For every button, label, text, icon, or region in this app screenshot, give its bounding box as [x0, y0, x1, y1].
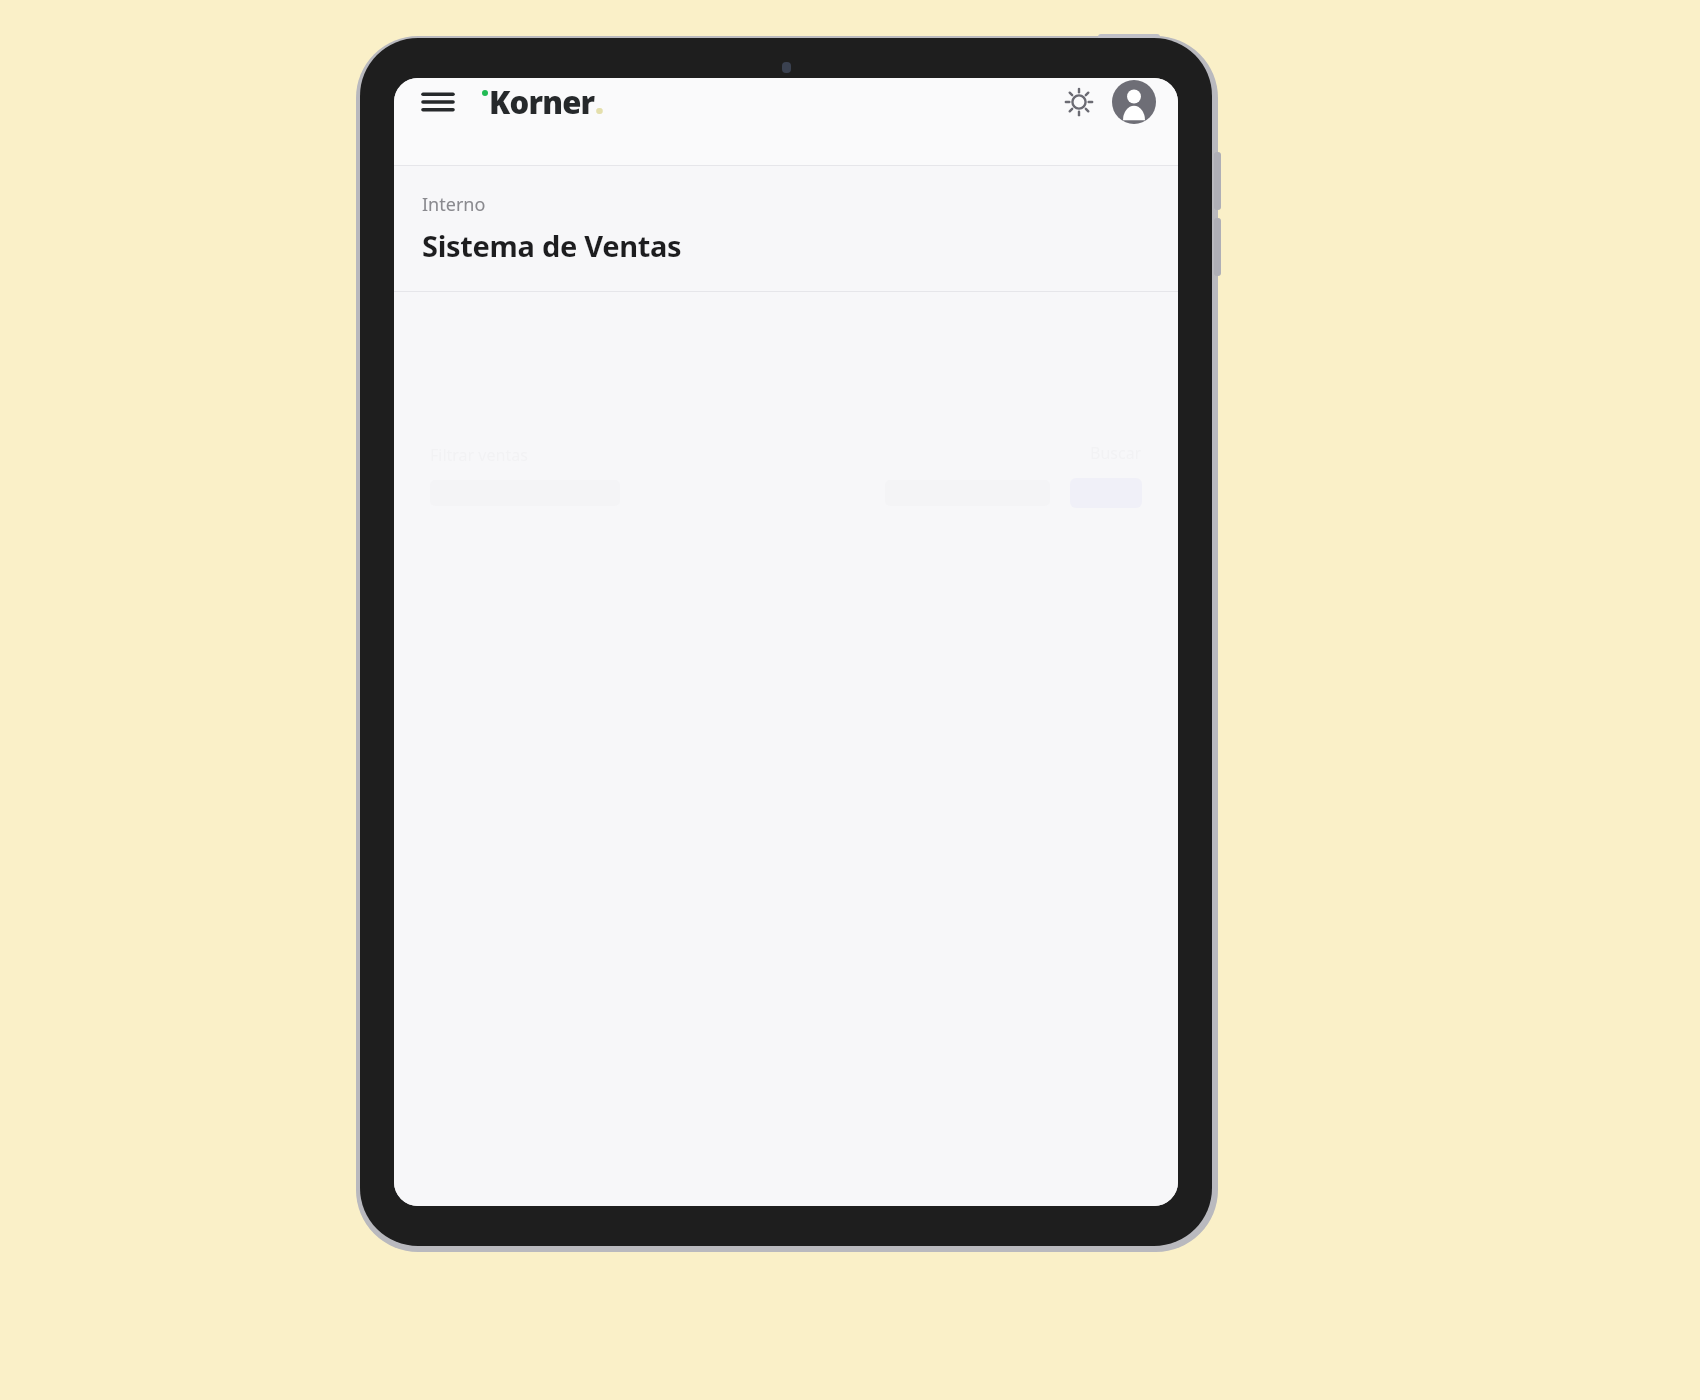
- button[interactable]: Korner home: [482, 78, 604, 126]
- staticText: .: [595, 81, 604, 123]
- staticText: Interno: [422, 192, 486, 217]
- staticText: Korner: [489, 81, 595, 123]
- button[interactable]: Toggle theme brightness: [1056, 79, 1102, 125]
- button[interactable]: Open navigation menu: [416, 80, 460, 124]
- button[interactable]: Account: [1112, 80, 1156, 124]
- staticText: Sistema de Ventas: [422, 226, 682, 265]
